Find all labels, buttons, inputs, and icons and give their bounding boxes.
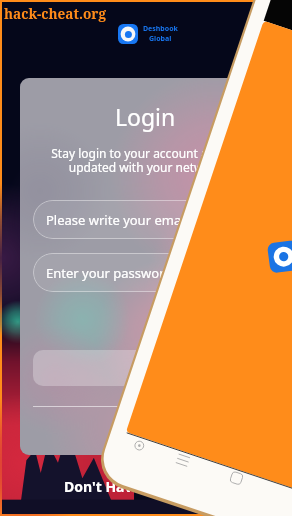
staticText: Stay login to your account and be update… [51, 145, 240, 176]
staticText: hack-cheat.org [4, 4, 106, 23]
button[interactable] [33, 350, 258, 386]
button[interactable]: Enter your password here [33, 253, 258, 292]
staticText: Global [149, 34, 172, 44]
staticText: Enter your password here [46, 264, 204, 282]
staticText: Login [115, 101, 176, 132]
staticText: Deshbook [143, 24, 178, 34]
button[interactable]: Don't Have Any Account? Sign Up [64, 477, 292, 496]
button[interactable]: Please write your email [33, 200, 258, 239]
staticText: Please write your email [46, 211, 188, 229]
staticText: Don't Have Any Account? Sign Up [64, 477, 292, 496]
button[interactable]: Deshbook [118, 24, 178, 44]
